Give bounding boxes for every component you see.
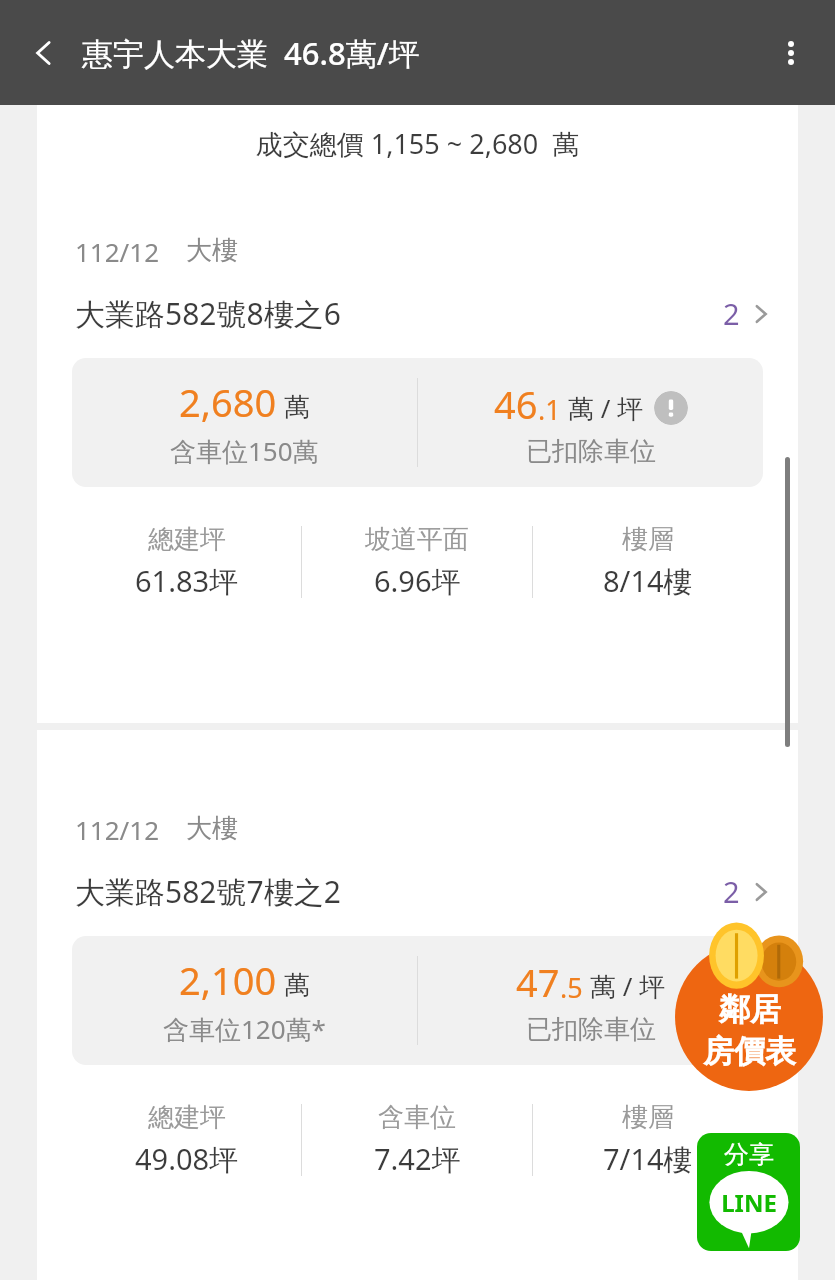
button[interactable]: 2,680 <box>72 358 763 487</box>
staticText: LINE <box>706 1186 792 1219</box>
staticText: 大樓 <box>186 234 238 267</box>
staticText: 大業路582號8樓之6 <box>75 293 341 334</box>
staticText: 61.83坪 <box>135 561 239 601</box>
button[interactable]: 成交總價 1,155 ~ 2,680 萬 <box>37 105 798 723</box>
staticText: 含車位150萬 <box>170 433 319 469</box>
staticText: 萬 / 坪 <box>590 968 666 1004</box>
button[interactable]: 2,100 <box>72 936 763 1065</box>
button[interactable]: 大業路582號8樓之6 <box>75 293 774 334</box>
button[interactable]: 112/12 <box>37 730 798 1280</box>
staticText: 47 <box>516 956 560 1008</box>
staticText: 7.42坪 <box>374 1139 461 1179</box>
staticText: 樓層 <box>622 1101 674 1134</box>
staticText: .1 <box>538 391 561 428</box>
staticText: 萬 <box>284 969 310 1002</box>
staticText: 6.96坪 <box>374 561 461 601</box>
staticText: 2 <box>723 872 740 911</box>
staticText: 總建坪 <box>148 1101 226 1134</box>
staticText: 坡道平面 <box>365 523 469 556</box>
button[interactable]: Info <box>654 391 688 425</box>
staticText: 含車位 <box>378 1101 456 1134</box>
staticText: 樓層 <box>622 523 674 556</box>
staticText: 8/14樓 <box>603 561 693 601</box>
staticText: 2 <box>723 294 740 333</box>
staticText: 惠宇人本大業 46.8萬/坪 <box>82 32 420 74</box>
button[interactable]: 鄰居房價表 <box>664 921 834 1091</box>
staticText: 房價表 <box>703 1032 796 1071</box>
staticText: 2,100 <box>179 954 277 1006</box>
button[interactable]: Back <box>8 17 80 89</box>
button[interactable]: 大業路582號7樓之2 <box>75 871 774 912</box>
staticText: 7/14樓 <box>603 1139 693 1179</box>
staticText: 46 <box>494 378 538 430</box>
staticText: 49.08坪 <box>135 1139 239 1179</box>
staticText: 成交總價 1,155 ~ 2,680 萬 <box>37 125 798 162</box>
staticText: .5 <box>560 969 583 1006</box>
staticText: 含車位120萬* <box>163 1011 326 1047</box>
button[interactable]: Share to LINE <box>697 1133 800 1251</box>
staticText: 大業路582號7樓之2 <box>75 871 341 912</box>
button[interactable]: More options <box>757 19 825 87</box>
staticText: 已扣除車位 <box>526 435 656 468</box>
staticText: 鄰居 <box>719 990 781 1029</box>
staticText: 大樓 <box>186 812 238 845</box>
staticText: 112/12 <box>75 812 160 847</box>
staticText: 112/12 <box>75 234 160 269</box>
staticText: 分享 <box>724 1139 774 1170</box>
staticText: 總建坪 <box>148 523 226 556</box>
staticText: 萬 / 坪 <box>568 390 644 426</box>
staticText: 萬 <box>284 391 310 424</box>
staticText: 2,680 <box>179 376 277 428</box>
staticText: 已扣除車位 <box>526 1013 656 1046</box>
